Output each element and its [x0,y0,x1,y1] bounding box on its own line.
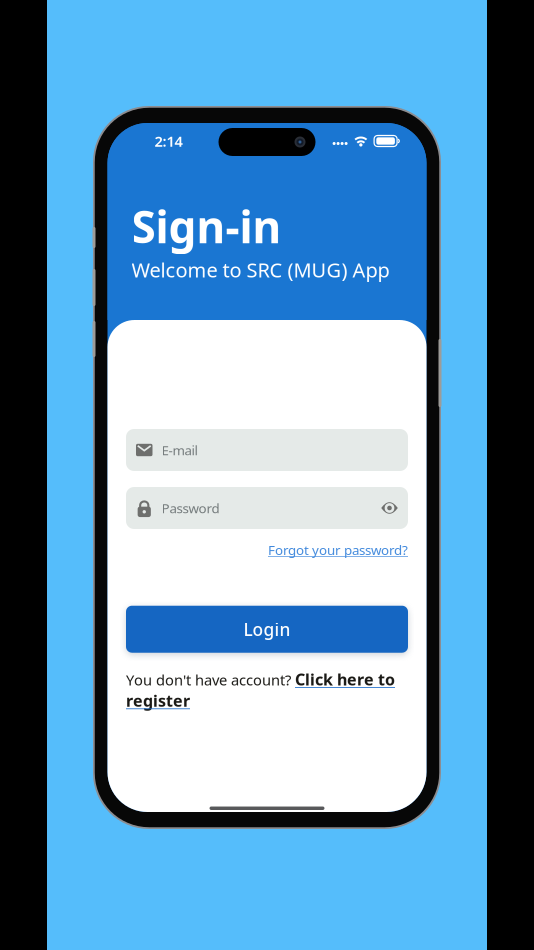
staticText: Forgot your password? [268,541,408,559]
staticText: You don't have account? Click here to re… [126,669,395,711]
staticText: Login [243,618,290,641]
button[interactable]: Password [126,487,408,529]
staticText: Sign-in [131,197,281,255]
button[interactable]: You don't have account? Click here to re… [126,669,408,711]
staticText: 2:14 [154,131,182,151]
staticText: Welcome to SRC (MUG) App [131,256,389,283]
staticText: E-mail [161,441,197,459]
button[interactable]: E-mail [126,429,408,471]
button[interactable]: Show password [381,499,398,516]
staticText: Password [161,499,219,517]
button[interactable]: Forgot your password? [268,541,408,559]
button[interactable]: Login [126,606,408,653]
